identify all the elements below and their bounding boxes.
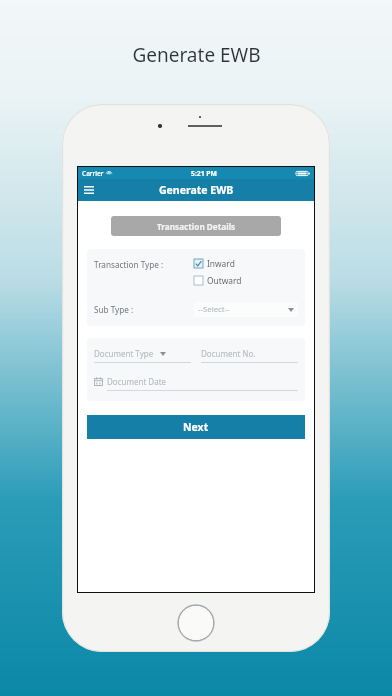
button[interactable]: Open navigation menu: [78, 179, 100, 201]
staticText: Document No.: [201, 348, 256, 359]
staticText: Generate EWB: [159, 183, 234, 197]
staticText: Sub Type :: [94, 304, 194, 315]
staticText: Document Date: [107, 376, 167, 387]
button[interactable]: Inward: [194, 258, 235, 269]
button[interactable]: Document Date: [94, 376, 298, 391]
button[interactable]: Outward: [194, 275, 242, 286]
button[interactable]: --Select--: [194, 302, 298, 317]
staticText: Inward: [207, 258, 235, 269]
staticText: Next: [183, 420, 209, 434]
button[interactable]: Next: [87, 415, 305, 439]
staticText: Document Type: [94, 348, 154, 359]
staticText: Transaction Type :: [94, 259, 194, 270]
staticText: Generate EWB: [132, 42, 261, 68]
button[interactable]: Transaction Details: [111, 216, 281, 236]
staticText: 5:21 PM: [191, 169, 217, 178]
staticText: Outward: [207, 275, 242, 286]
button[interactable]: Document No.: [201, 348, 298, 363]
button[interactable]: Document Type: [94, 348, 191, 363]
staticText: Transaction Details: [157, 221, 236, 232]
staticText: Carrier: [82, 169, 104, 178]
staticText: --Select--: [198, 304, 288, 315]
